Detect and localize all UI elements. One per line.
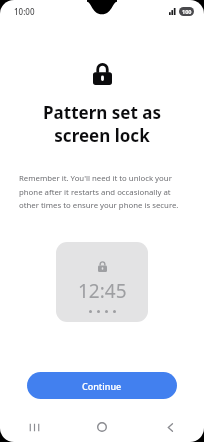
staticText: 12:45 <box>78 278 127 304</box>
staticText: 10:00 <box>14 6 35 17</box>
button[interactable]: Back <box>136 412 204 442</box>
button[interactable]: Home <box>68 412 136 442</box>
staticText: 100 <box>182 8 192 15</box>
staticText: Remember it. You'll need it to unlock yo… <box>19 173 187 210</box>
staticText: Pattern set as screen lock <box>16 101 188 147</box>
staticText: Continue <box>82 380 122 392</box>
button[interactable]: Recent apps <box>0 412 68 442</box>
button[interactable]: Continue <box>27 372 177 399</box>
